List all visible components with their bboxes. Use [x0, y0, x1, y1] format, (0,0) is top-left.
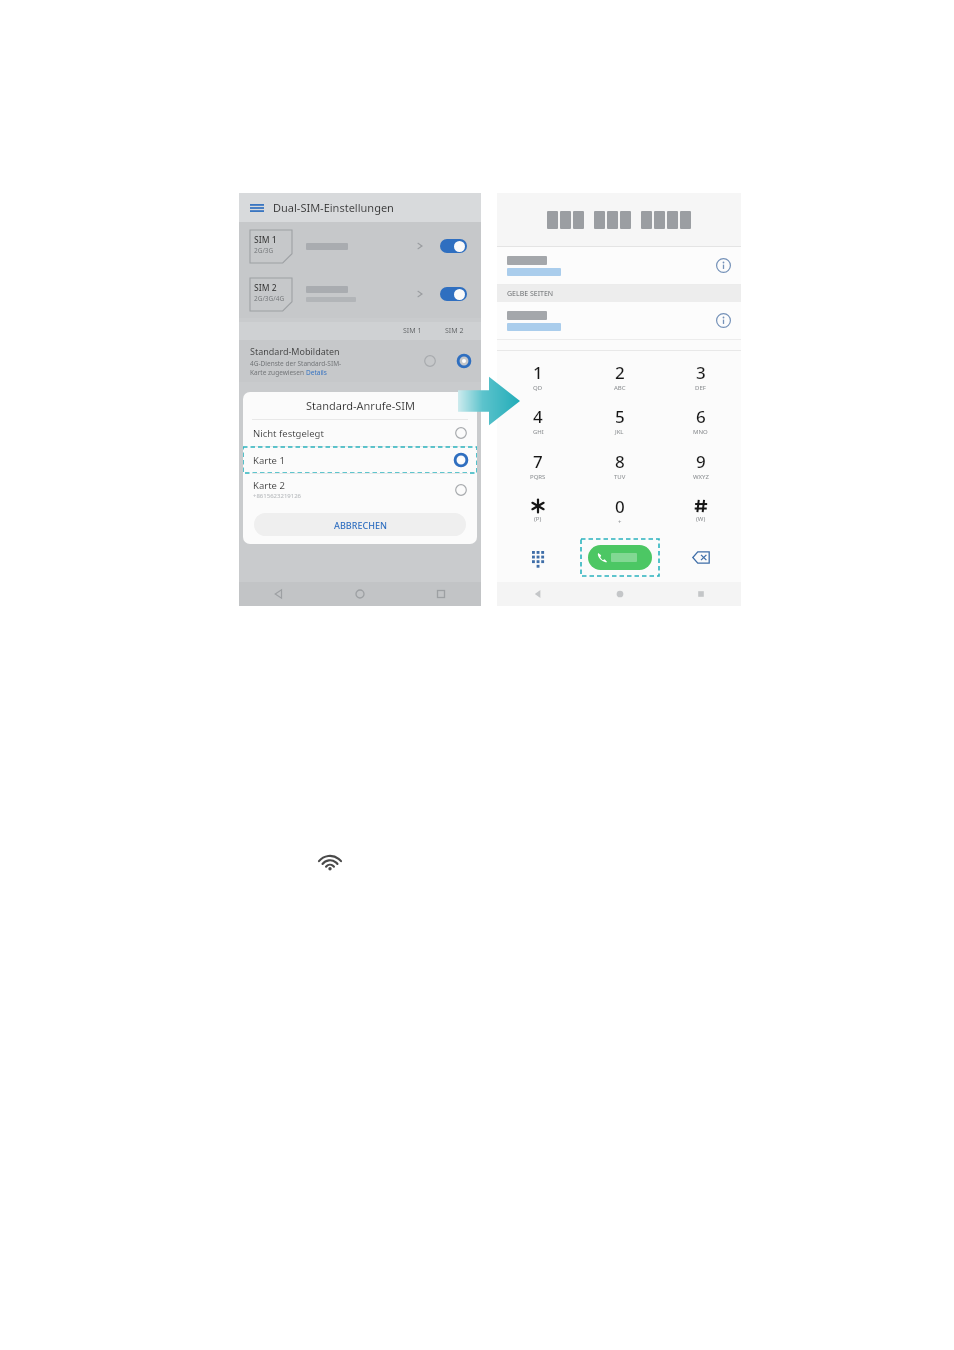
staticText: Standard-Mobildaten: [250, 345, 340, 357]
button[interactable]: Details: [716, 258, 731, 273]
button[interactable]: Hash: [660, 488, 741, 533]
staticText: SIM 1: [403, 326, 422, 336]
button[interactable]: Delete: [692, 551, 710, 564]
staticText: 3: [696, 361, 706, 384]
staticText: Karte 2: [253, 479, 285, 492]
staticText: JKL: [615, 428, 624, 436]
staticText: WXYZ: [693, 473, 709, 481]
button[interactable]: Karte 1: [243, 447, 477, 473]
button[interactable]: Home: [319, 582, 400, 606]
staticText: 6: [696, 405, 706, 428]
button[interactable]: Back: [239, 582, 319, 606]
staticText: Karte 1: [253, 454, 285, 467]
staticText: 2G/3G: [254, 246, 274, 255]
button[interactable]: Home: [579, 582, 660, 606]
staticText: MNO: [693, 428, 708, 436]
staticText: Dual-SIM-Einstellungen: [273, 200, 394, 215]
button[interactable]: Toggle SIM: [440, 239, 467, 253]
button[interactable]: 2: [579, 354, 660, 398]
staticText: SIM 2: [445, 326, 464, 336]
staticText: 4: [533, 405, 543, 428]
staticText: 4G-Dienste der Standard-SIM-: [250, 359, 342, 368]
button[interactable]: 4: [497, 398, 579, 443]
button[interactable]: Toggle SIM: [440, 287, 467, 301]
button[interactable]: 7: [497, 443, 579, 488]
staticText: 9: [696, 450, 706, 473]
staticText: (P): [534, 515, 542, 523]
staticText: TUV: [614, 473, 626, 481]
staticText: Nicht festgelegt: [253, 427, 324, 440]
staticText: 0: [615, 495, 625, 518]
button[interactable]: 6: [660, 398, 741, 443]
staticText: SIM 2: [254, 282, 277, 294]
staticText: +8615623219126: [253, 492, 302, 500]
button[interactable]: Back: [497, 582, 579, 606]
staticText: 5: [615, 405, 625, 428]
button[interactable]: Call: [588, 545, 652, 570]
button[interactable]: Details: [497, 302, 741, 339]
button[interactable]: Karte 2: [243, 474, 477, 505]
button[interactable]: 8: [579, 443, 660, 488]
button[interactable]: Keypad: [532, 551, 545, 564]
staticText: SIM 1: [254, 234, 277, 246]
button[interactable]: Recents: [660, 582, 741, 606]
button[interactable]: SIM 1: [239, 222, 481, 270]
staticText: +: [618, 518, 622, 526]
staticText: 8: [615, 450, 625, 473]
staticText: Standard-Anrufe-SIM: [306, 398, 415, 413]
staticText: Details: [306, 368, 327, 377]
staticText: 2G/3G/4G: [254, 294, 285, 303]
button[interactable]: ABBRECHEN: [254, 513, 466, 536]
button[interactable]: SIM 2: [239, 270, 481, 318]
button[interactable]: Menu: [250, 201, 264, 215]
staticText: PQRS: [530, 473, 546, 481]
staticText: GELBE SEITEN: [507, 289, 554, 299]
button[interactable]: 0: [579, 488, 660, 533]
button[interactable]: 9: [660, 443, 741, 488]
staticText: 2: [615, 361, 625, 384]
staticText: Karte zugewiesen: [250, 368, 306, 377]
staticText: QD: [533, 384, 543, 392]
staticText: (W): [696, 515, 706, 523]
staticText: GHI: [533, 428, 544, 436]
button[interactable]: 1: [497, 354, 579, 398]
button[interactable]: Standard-Mobildaten: [239, 340, 481, 382]
button[interactable]: Recents: [400, 582, 481, 606]
staticText: 7: [533, 450, 543, 473]
button[interactable]: 3: [660, 354, 741, 398]
button[interactable]: Nicht festgelegt: [243, 420, 477, 446]
staticText: ABC: [614, 384, 626, 392]
button[interactable]: Star: [497, 488, 579, 533]
button[interactable]: 5: [579, 398, 660, 443]
button[interactable]: Details: [497, 247, 741, 284]
staticText: 1: [533, 361, 543, 384]
staticText: ABBRECHEN: [334, 519, 387, 531]
staticText: DEF: [695, 384, 706, 392]
button[interactable]: Details: [716, 313, 731, 328]
